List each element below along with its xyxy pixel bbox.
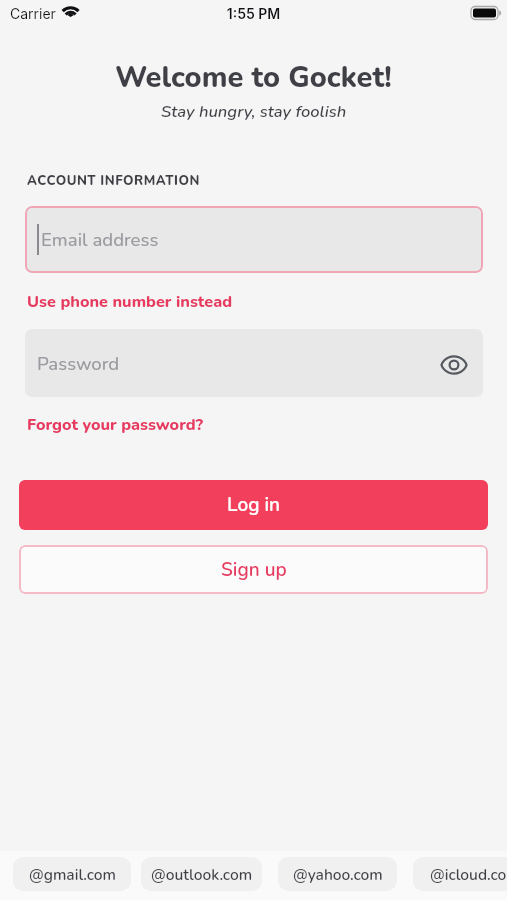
staticText: 1:55 PM — [0, 5, 507, 22]
button[interactable]: Email address — [25, 206, 483, 273]
staticText: Welcome to Gocket! — [115, 58, 392, 98]
button[interactable]: @gmail.com — [13, 857, 131, 891]
staticText: Carrier — [10, 5, 56, 22]
staticText: Sign up — [221, 557, 287, 583]
button[interactable]: Log in — [19, 480, 488, 530]
button[interactable]: @icloud.com — [413, 857, 507, 891]
staticText: @yahoo.com — [293, 864, 383, 885]
staticText: @icloud.com — [430, 864, 507, 885]
button[interactable]: @outlook.com — [141, 857, 262, 891]
staticText: Log in — [227, 492, 280, 518]
button[interactable]: Sign up — [19, 545, 488, 594]
staticText: ACCOUNT INFORMATION — [27, 172, 200, 190]
staticText: Use phone number instead — [27, 291, 233, 312]
button[interactable]: Forgot your password? — [27, 414, 204, 435]
staticText: Email address — [41, 227, 159, 252]
staticText: @gmail.com — [29, 864, 116, 885]
button[interactable]: Password — [25, 329, 483, 397]
staticText: Stay hungry, stay foolish — [161, 100, 347, 123]
staticText: Forgot your password? — [27, 414, 204, 435]
button[interactable] — [441, 351, 467, 375]
staticText: Password — [37, 351, 120, 376]
button[interactable]: Use phone number instead — [27, 291, 233, 312]
staticText: @outlook.com — [151, 864, 253, 885]
button[interactable]: @yahoo.com — [278, 857, 397, 891]
